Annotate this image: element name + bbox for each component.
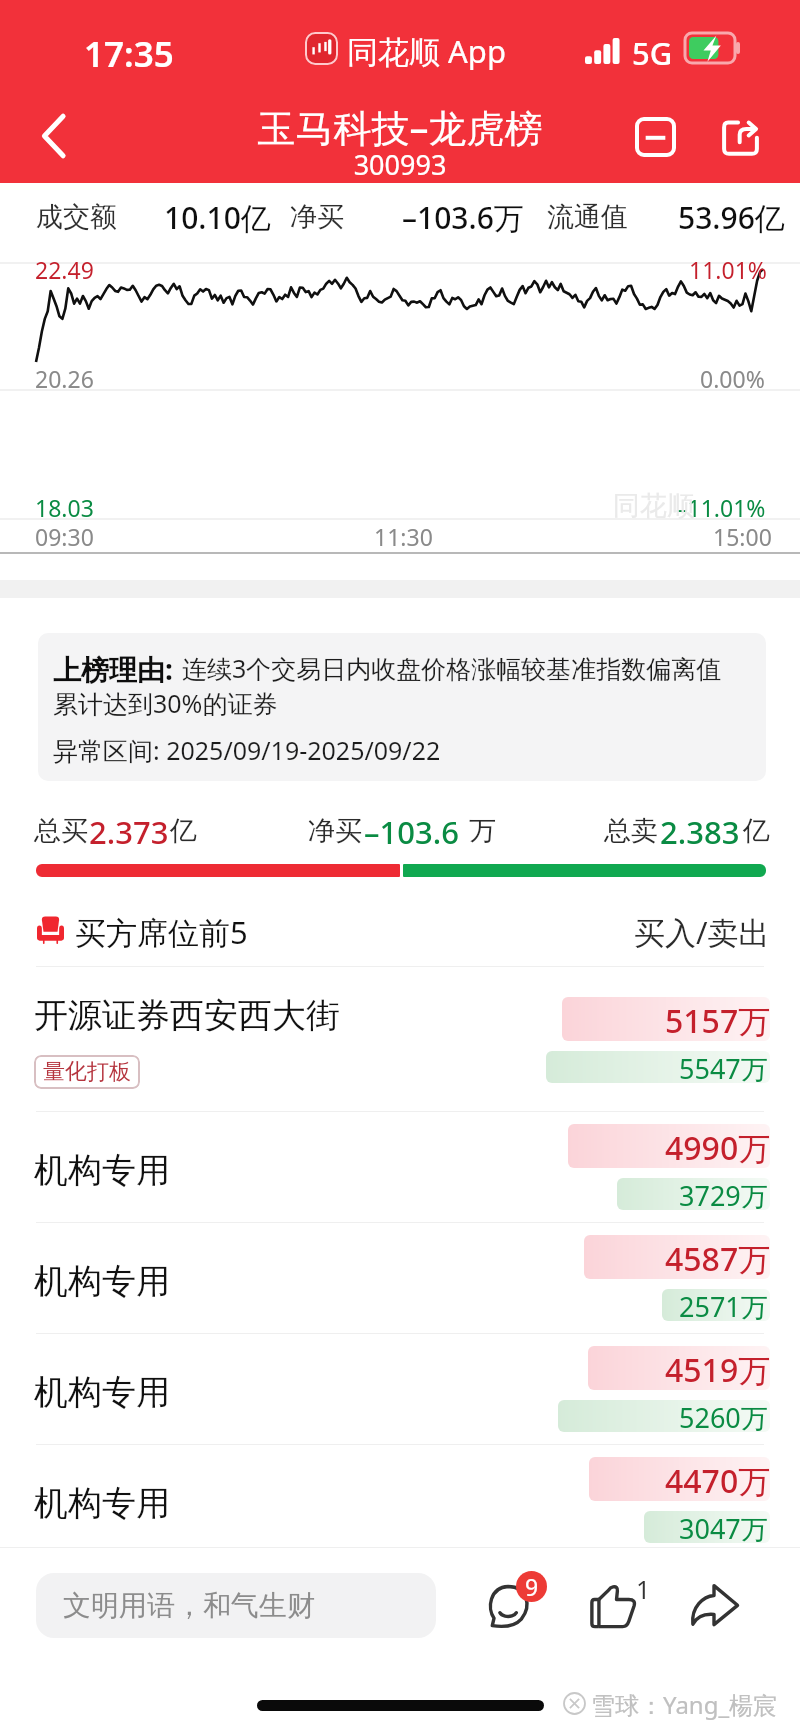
staticText: 异常区间: 2025/09/19-2025/09/22: [53, 733, 441, 767]
staticText: 流通值: [547, 200, 628, 234]
staticText: 量化打板: [43, 1058, 131, 1086]
staticText: 10.10亿: [164, 197, 271, 238]
staticText: 5547万: [679, 1050, 768, 1087]
staticText: 20.26: [35, 363, 94, 394]
button[interactable]: [0, 1222, 800, 1333]
button[interactable]: 文明用语，和气生财: [36, 1573, 436, 1638]
button[interactable]: Share: [700, 97, 780, 177]
staticText: 4470万: [665, 1459, 771, 1503]
staticText: 22.49: [35, 254, 94, 285]
staticText: 11:30: [374, 521, 433, 552]
staticText: 4587万: [665, 1237, 771, 1281]
staticText: 亿: [743, 814, 770, 848]
staticText: 玉马科技–龙虎榜: [0, 101, 800, 153]
staticText: 53.96亿: [678, 197, 785, 238]
staticText: –103.6万: [402, 197, 524, 238]
button[interactable]: [0, 1333, 800, 1444]
staticText: 5157万: [665, 999, 771, 1043]
staticText: 净买: [290, 200, 344, 234]
button[interactable]: [0, 966, 800, 1111]
staticText: 2.373: [89, 811, 169, 853]
staticText: 0.00%: [700, 363, 765, 394]
button[interactable]: Comments: [477, 1566, 553, 1636]
staticText: 机构专用: [34, 1371, 170, 1414]
staticText: 1: [636, 1572, 651, 1606]
staticText: 5260万: [679, 1399, 768, 1436]
staticText: 买方席位前5: [75, 911, 248, 953]
staticText: –11.01%: [676, 492, 766, 523]
staticText: 累计达到30%的证券: [53, 686, 278, 720]
staticText: 雪球：Yang_楊宸: [591, 1688, 778, 1721]
staticText: 3047万: [679, 1510, 768, 1547]
staticText: 机构专用: [34, 1260, 170, 1303]
staticText: 300993: [0, 146, 800, 183]
button[interactable]: Like: [580, 1566, 656, 1636]
staticText: 成交额: [36, 200, 117, 234]
button[interactable]: [0, 1444, 800, 1547]
staticText: 万: [469, 814, 496, 848]
staticText: 9: [525, 1571, 539, 1602]
staticText: 15:00: [713, 521, 772, 552]
staticText: –103.6: [364, 811, 459, 853]
staticText: 2571万: [679, 1288, 768, 1325]
button[interactable]: Back: [14, 92, 94, 180]
staticText: 文明用语，和气生财: [63, 1588, 315, 1623]
staticText: 同花顺 App: [347, 30, 506, 72]
staticText: 机构专用: [34, 1482, 170, 1525]
staticText: 总卖: [604, 814, 658, 848]
staticText: 机构专用: [34, 1149, 170, 1192]
staticText: 4990万: [665, 1126, 771, 1170]
staticText: 09:30: [35, 521, 94, 552]
staticText: 买入/卖出: [634, 911, 770, 953]
staticText: 开源证券西安西大街: [34, 994, 340, 1037]
button[interactable]: Minimize: [615, 97, 695, 177]
button[interactable]: [0, 1111, 800, 1222]
staticText: 上榜理由:: [53, 650, 173, 688]
staticText: 18.03: [35, 492, 94, 523]
staticText: 净买: [308, 814, 362, 848]
staticText: 2.383: [660, 811, 740, 853]
staticText: 17:35: [84, 30, 174, 78]
staticText: 3729万: [679, 1177, 768, 1214]
staticText: 连续3个交易日内收盘价格涨幅较基准指数偏离值: [182, 651, 722, 685]
staticText: 4519万: [665, 1348, 771, 1392]
staticText: 总买: [34, 814, 88, 848]
button[interactable]: Share: [680, 1566, 756, 1636]
staticText: 11.01%: [689, 254, 767, 285]
staticText: 同花顺: [613, 489, 694, 523]
staticText: 5G: [632, 32, 673, 74]
staticText: 亿: [170, 814, 197, 848]
